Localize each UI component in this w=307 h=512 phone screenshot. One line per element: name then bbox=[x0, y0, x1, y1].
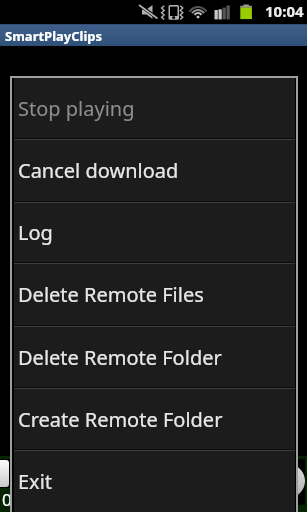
staticText: 10:04 bbox=[265, 1, 304, 21]
button[interactable]: Stop playing bbox=[14, 78, 295, 140]
button[interactable]: Log bbox=[14, 203, 295, 264]
button[interactable]: Cancel download bbox=[14, 140, 295, 203]
staticText: Stop playing bbox=[18, 95, 135, 122]
staticText: Delete Remote Folder bbox=[18, 344, 222, 371]
button[interactable]: Delete Remote Files bbox=[14, 264, 295, 327]
button[interactable]: Exit bbox=[14, 451, 295, 511]
button[interactable]: Create Remote Folder bbox=[14, 389, 295, 451]
button[interactable]: Delete Remote Folder bbox=[14, 327, 295, 389]
staticText: Delete Remote Files bbox=[18, 281, 204, 308]
staticText: Log bbox=[18, 219, 53, 246]
staticText: Exit bbox=[18, 468, 53, 495]
staticText: Cancel download bbox=[18, 157, 179, 184]
staticText: Create Remote Folder bbox=[18, 406, 223, 433]
staticText: SmartPlayClips bbox=[5, 27, 103, 45]
staticText: 0 bbox=[2, 488, 12, 511]
